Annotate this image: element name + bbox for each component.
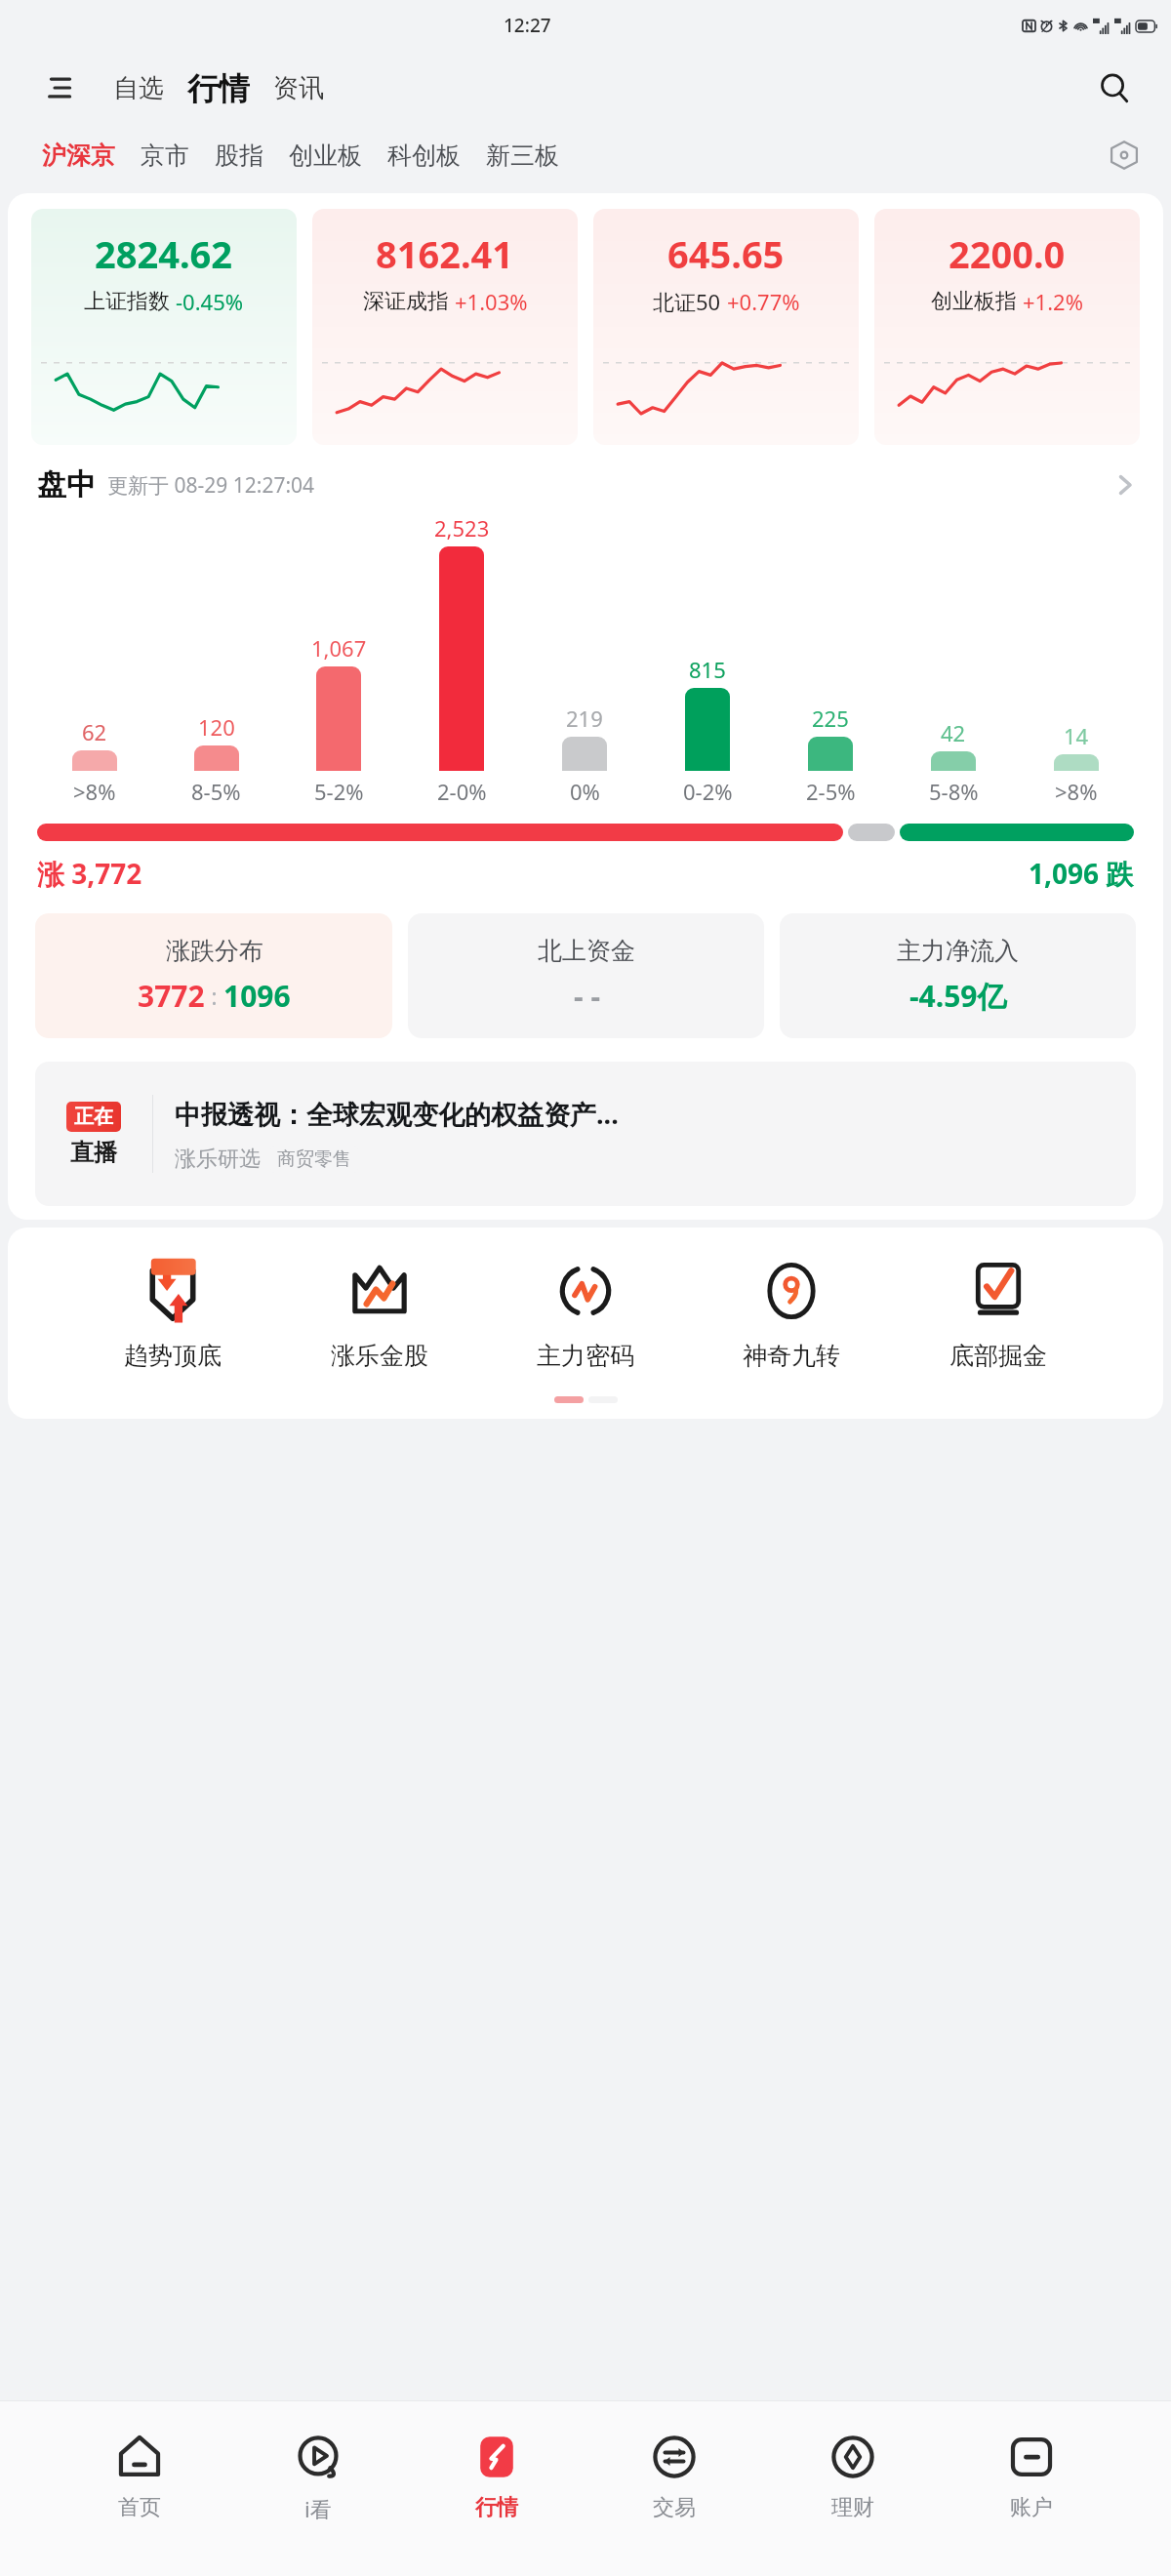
- staticText: 北证50: [653, 287, 721, 316]
- button[interactable]: 2824.62: [31, 209, 297, 445]
- staticText: 5-2%: [314, 777, 364, 806]
- staticText: 1096: [223, 976, 291, 1016]
- staticText: - -: [574, 976, 600, 1016]
- staticText: 225: [812, 704, 849, 733]
- staticText: 创业板指: [931, 288, 1017, 315]
- staticText: :: [205, 980, 223, 1012]
- staticText: 3772: [138, 976, 205, 1016]
- staticText: 资讯: [273, 72, 324, 104]
- button[interactable]: 新三板: [473, 133, 572, 179]
- button[interactable]: 京市: [128, 133, 202, 179]
- staticText: 14: [1064, 721, 1089, 750]
- staticText: 科创板: [387, 141, 461, 171]
- staticText: 上证指数: [84, 288, 170, 315]
- staticText: 2-5%: [806, 777, 856, 806]
- staticText: +1.2%: [1023, 287, 1083, 316]
- button[interactable]: 正在: [35, 1062, 1136, 1206]
- staticText: >8%: [1055, 777, 1098, 806]
- button[interactable]: 645.65: [593, 209, 859, 445]
- button[interactable]: 14: [1015, 513, 1138, 806]
- staticText: -4.59亿: [909, 976, 1007, 1016]
- staticText: -0.45%: [176, 287, 244, 316]
- staticText: 沪深京: [42, 141, 115, 171]
- staticText: 新三板: [486, 141, 559, 171]
- staticText: 219: [566, 704, 603, 733]
- button[interactable]: 主力密码: [531, 1251, 640, 1375]
- button[interactable]: 行情: [183, 67, 254, 110]
- button[interactable]: 815: [646, 513, 769, 806]
- staticText: 更新于 08-29 12:27:04: [107, 471, 315, 500]
- staticText: 深证成指: [363, 288, 449, 315]
- button[interactable]: 交易: [635, 2426, 713, 2525]
- staticText: i看: [304, 2494, 332, 2523]
- staticText: 北上资金: [538, 936, 635, 966]
- staticText: 主力密码: [537, 1341, 634, 1371]
- staticText: 2,523: [434, 513, 490, 543]
- staticText: 62: [82, 717, 107, 746]
- button[interactable]: 盘中: [8, 466, 1163, 503]
- button[interactable]: 225: [769, 513, 892, 806]
- staticText: 815: [689, 655, 726, 684]
- button[interactable]: i看: [279, 2426, 357, 2527]
- staticText: 行情: [475, 2494, 518, 2521]
- button[interactable]: 账户: [992, 2426, 1070, 2525]
- button[interactable]: 科创板: [375, 133, 473, 179]
- staticText: 创业板: [289, 141, 362, 171]
- button[interactable]: 行情: [458, 2426, 536, 2525]
- button[interactable]: 菜单: [39, 66, 82, 109]
- button[interactable]: 股指: [202, 133, 276, 179]
- button[interactable]: 主力净流入: [780, 913, 1136, 1038]
- button[interactable]: 2,523: [400, 513, 523, 806]
- button[interactable]: 底部掘金: [944, 1251, 1053, 1375]
- staticText: 1,067: [311, 633, 367, 663]
- staticText: 盘中: [37, 466, 96, 503]
- button[interactable]: 首页: [101, 2426, 179, 2525]
- staticText: 涨乐金股: [331, 1341, 428, 1371]
- button[interactable]: 涨跌分布: [35, 913, 392, 1038]
- staticText: 首页: [118, 2494, 161, 2521]
- staticText: 645.65: [667, 228, 785, 279]
- staticText: 中报透视：全球宏观变化的权益资产...: [175, 1096, 619, 1132]
- staticText: 底部掘金: [949, 1341, 1047, 1371]
- button[interactable]: 更多板块: [1101, 132, 1148, 179]
- button[interactable]: 理财: [814, 2426, 892, 2525]
- button[interactable]: 120: [155, 513, 277, 806]
- button[interactable]: 1,067: [277, 513, 400, 806]
- staticText: 42: [941, 718, 966, 747]
- staticText: 理财: [831, 2494, 874, 2521]
- staticText: 8-5%: [191, 777, 241, 806]
- button[interactable]: 8162.41: [312, 209, 578, 445]
- staticText: 1,096 跌: [1029, 855, 1134, 892]
- button[interactable]: 自选: [109, 66, 168, 110]
- staticText: 2200.0: [949, 228, 1066, 279]
- button[interactable]: 资讯: [269, 66, 328, 110]
- staticText: 8162.41: [376, 228, 514, 279]
- staticText: 京市: [141, 141, 189, 171]
- staticText: 直播: [70, 1138, 117, 1167]
- button[interactable]: 趋势顶底: [118, 1251, 227, 1375]
- staticText: 12:27: [504, 13, 551, 38]
- button[interactable]: 2200.0: [874, 209, 1140, 445]
- staticText: 2-0%: [437, 777, 487, 806]
- staticText: 涨跌分布: [166, 936, 263, 966]
- button[interactable]: 42: [892, 513, 1015, 806]
- staticText: 神奇九转: [743, 1341, 840, 1371]
- staticText: 涨乐研选: [175, 1146, 261, 1173]
- staticText: 主力净流入: [897, 936, 1019, 966]
- button[interactable]: 沪深京: [29, 133, 128, 179]
- staticText: 5-8%: [929, 777, 979, 806]
- staticText: 行情: [187, 69, 250, 108]
- button[interactable]: 涨乐金股: [325, 1251, 434, 1375]
- staticText: 趋势顶底: [124, 1341, 222, 1371]
- staticText: 2824.62: [95, 228, 233, 279]
- staticText: 涨 3,772: [37, 855, 142, 892]
- staticText: 0%: [570, 777, 600, 806]
- button[interactable]: 219: [523, 513, 646, 806]
- button[interactable]: 搜索: [1091, 64, 1138, 111]
- button[interactable]: 创业板: [276, 133, 375, 179]
- button[interactable]: 62: [33, 513, 155, 806]
- staticText: 股指: [215, 141, 263, 171]
- staticText: 0-2%: [683, 777, 733, 806]
- button[interactable]: 北上资金: [408, 913, 764, 1038]
- button[interactable]: 神奇九转: [737, 1251, 846, 1375]
